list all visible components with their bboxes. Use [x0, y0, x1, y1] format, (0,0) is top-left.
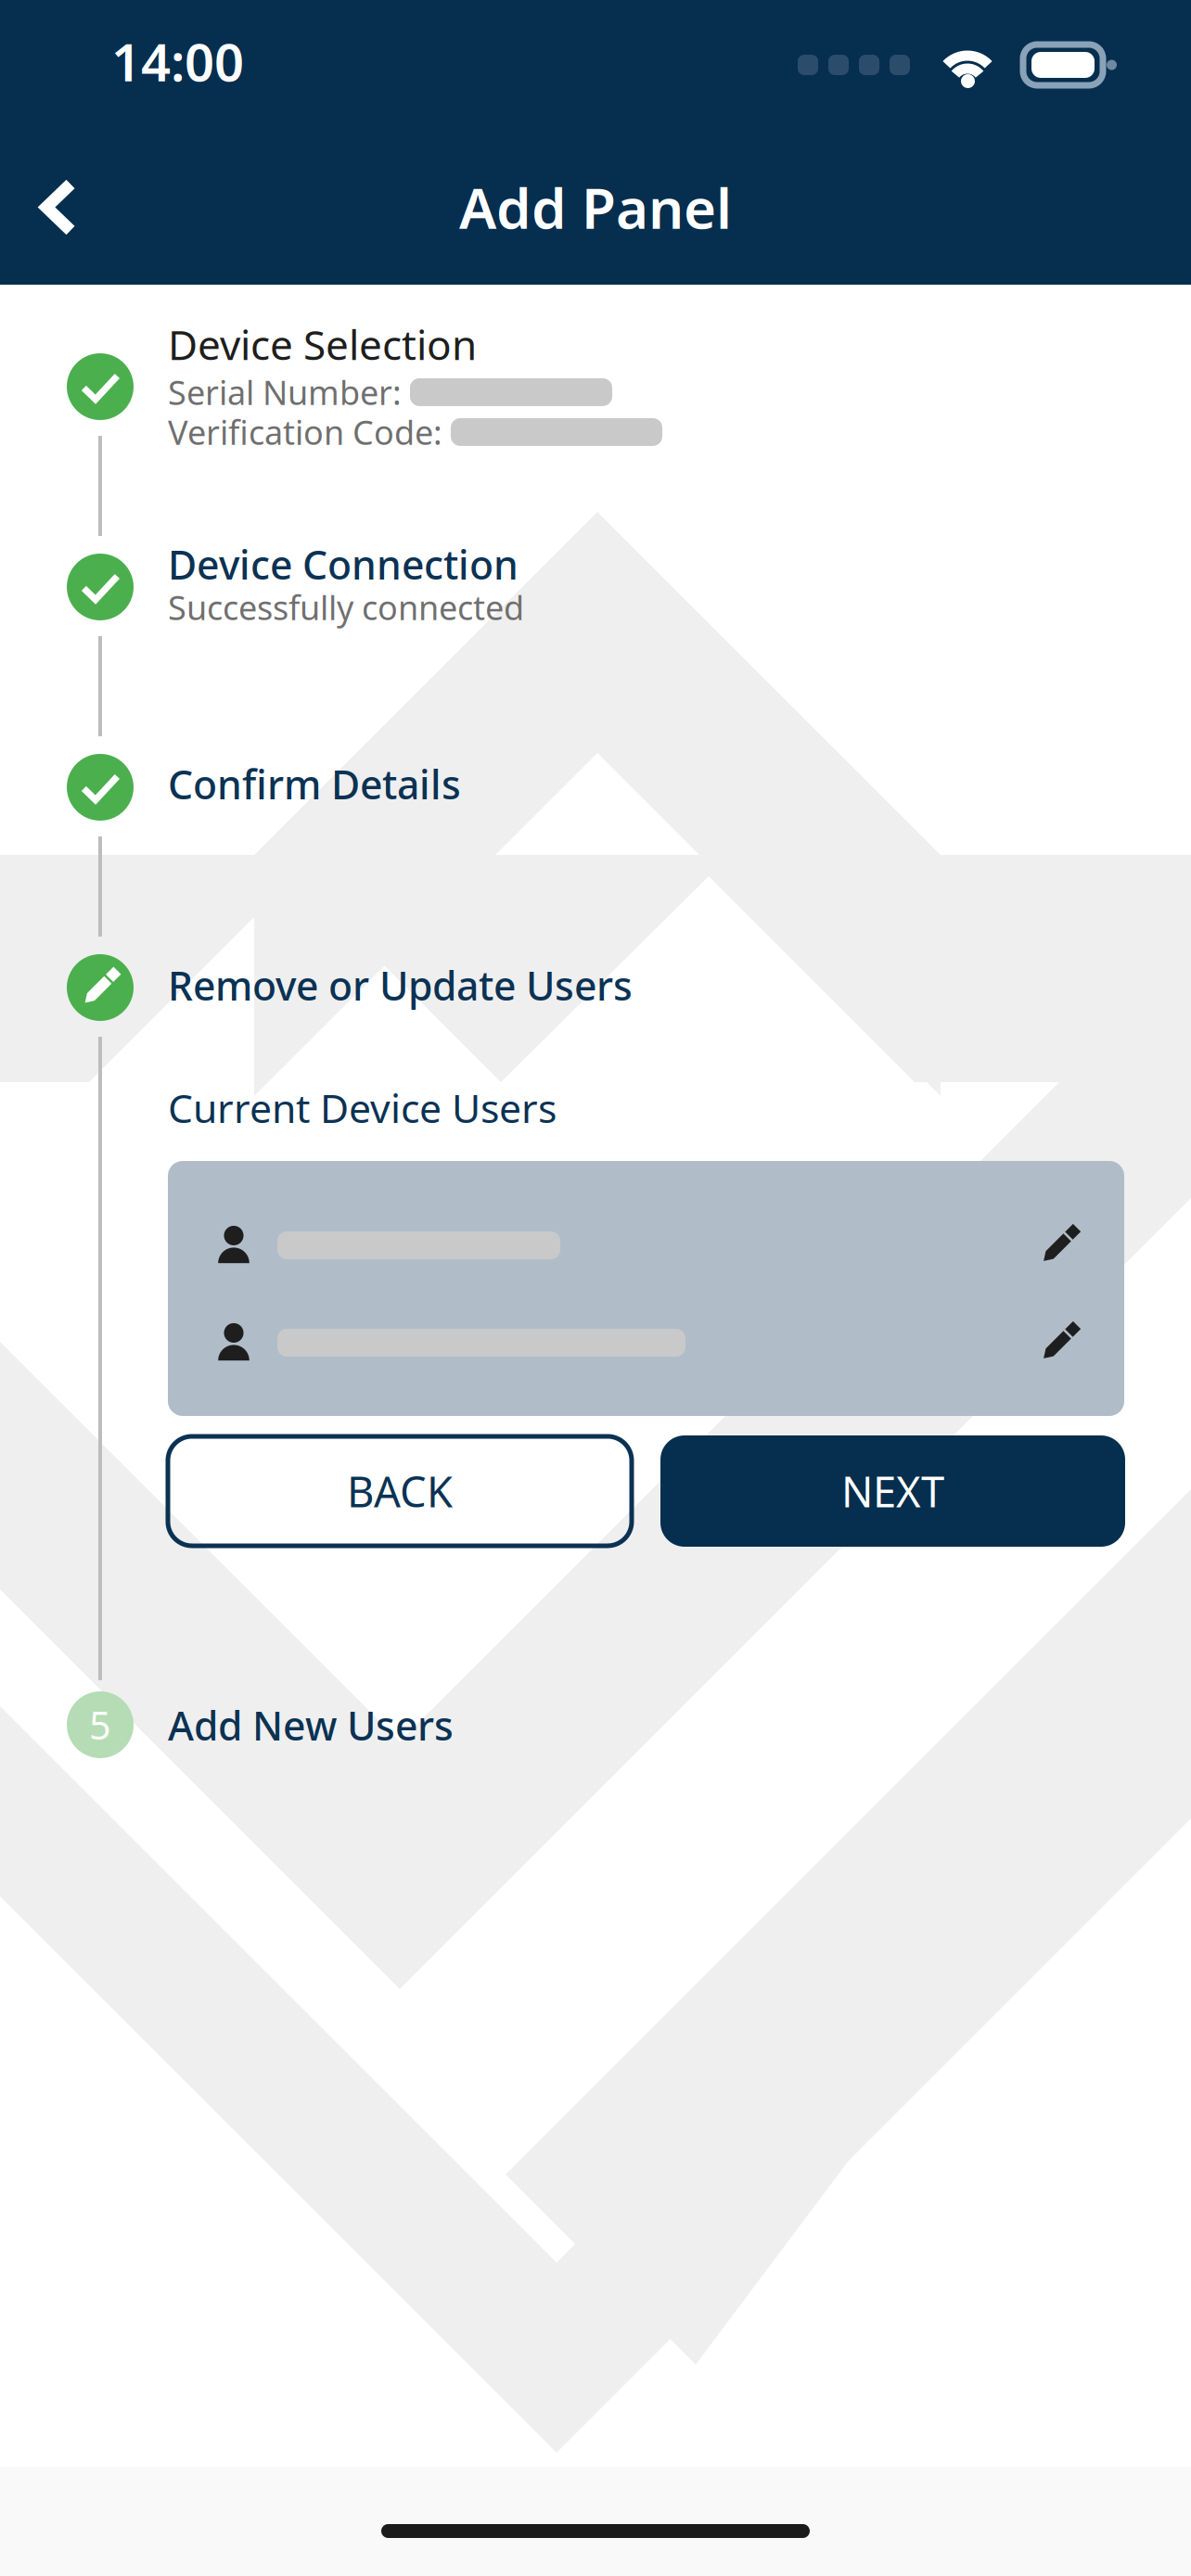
button[interactable]: Edit user — [1035, 1201, 1124, 1290]
staticText: Remove or Update Users — [168, 959, 633, 1011]
staticText: Add Panel — [459, 170, 732, 244]
staticText: BACK — [347, 1463, 453, 1519]
staticText: Successfully connected — [168, 585, 524, 629]
staticText: 14:00 — [111, 27, 244, 96]
button[interactable]: Edit user — [1035, 1298, 1124, 1387]
staticText: Add New Users — [168, 1699, 454, 1751]
staticText: Device Selection — [168, 317, 477, 371]
staticText: Serial Number: — [168, 370, 410, 414]
staticText: Confirm Details — [168, 758, 461, 810]
staticText: Verification Code: — [168, 410, 451, 454]
button[interactable]: Back — [0, 143, 119, 271]
staticText: NEXT — [841, 1463, 944, 1519]
staticText: 5 — [89, 1699, 111, 1750]
button[interactable]: NEXT — [660, 1435, 1125, 1547]
staticText: Current Device Users — [168, 1081, 557, 1134]
button[interactable]: BACK — [168, 1436, 632, 1546]
staticText: Device Connection — [168, 538, 519, 590]
